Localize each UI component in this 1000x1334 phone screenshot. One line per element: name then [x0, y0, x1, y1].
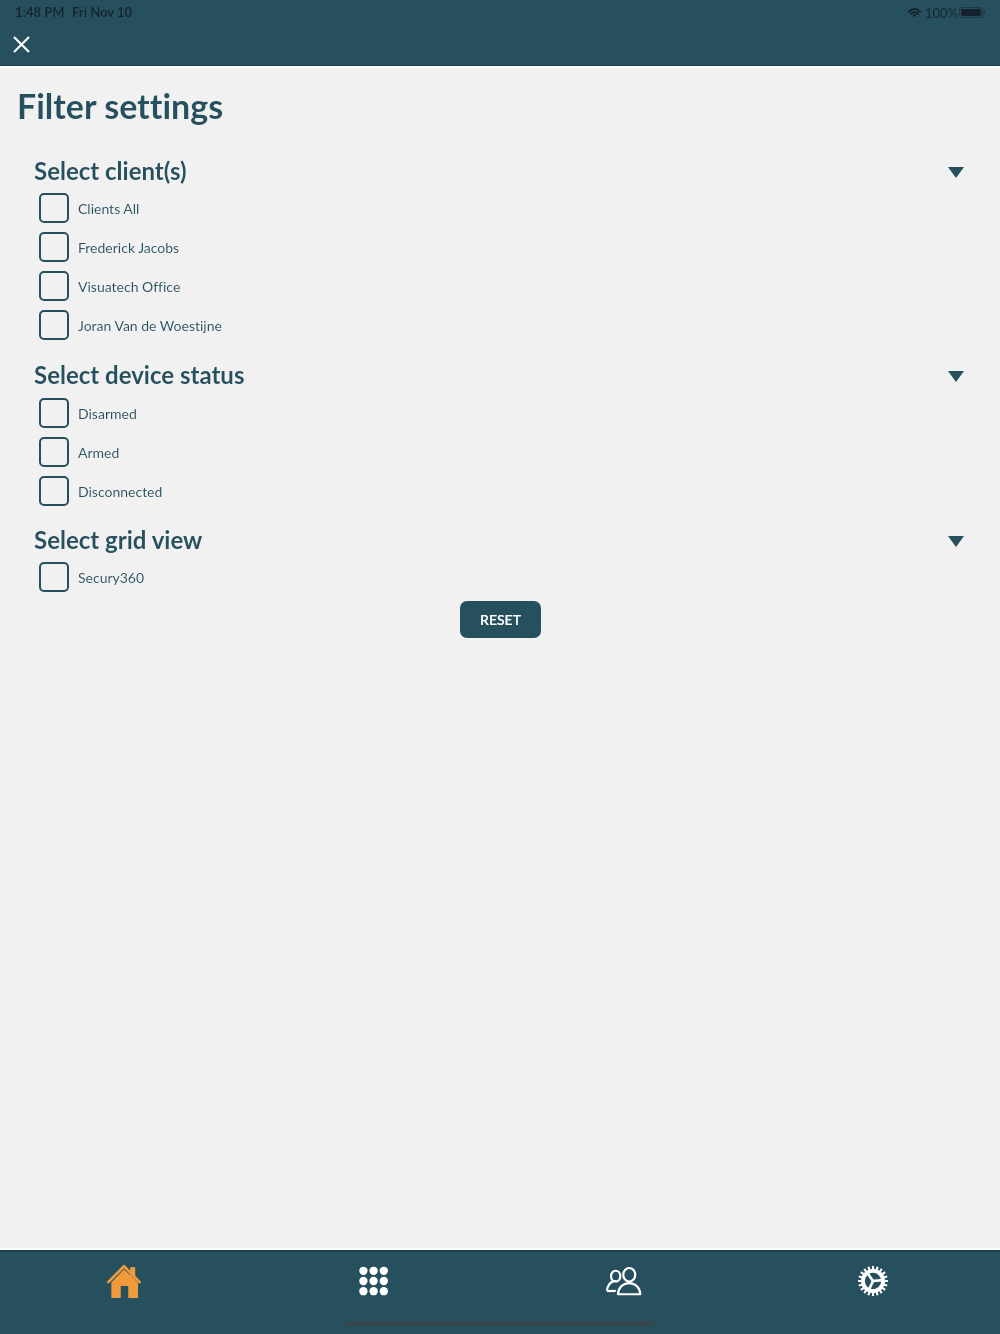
- button[interactable]: Select grid view: [0, 524, 1000, 554]
- button[interactable]: Secury360: [0, 558, 1000, 596]
- staticText: Filter settings: [17, 85, 224, 126]
- button[interactable]: RESET: [460, 601, 541, 638]
- button[interactable]: Home: [64, 1248, 184, 1314]
- staticText: Select grid view: [34, 525, 203, 554]
- button[interactable]: Joran Van de Woestijne: [0, 306, 1000, 344]
- staticText: Disarmed: [78, 405, 137, 422]
- button[interactable]: Close: [5, 28, 37, 60]
- button[interactable]: Disarmed: [0, 394, 1000, 432]
- button[interactable]: Armed: [0, 433, 1000, 471]
- staticText: Disconnected: [78, 483, 163, 500]
- button[interactable]: Clients: [564, 1248, 684, 1314]
- staticText: Select device status: [34, 360, 245, 389]
- button[interactable]: Visuatech Office: [0, 267, 1000, 305]
- button[interactable]: Disconnected: [0, 472, 1000, 510]
- staticText: Joran Van de Woestijne: [78, 317, 222, 334]
- staticText: Frederick Jacobs: [78, 239, 180, 256]
- button[interactable]: Frederick Jacobs: [0, 228, 1000, 266]
- staticText: Secury360: [78, 569, 145, 586]
- staticText: 100%: [925, 5, 959, 21]
- button[interactable]: Devices: [313, 1248, 433, 1314]
- button[interactable]: Clients All: [0, 189, 1000, 227]
- staticText: Visuatech Office: [78, 278, 181, 295]
- staticText: Fri Nov 10: [72, 4, 133, 20]
- staticText: 1:48 PM: [15, 4, 65, 20]
- button[interactable]: Settings: [813, 1248, 933, 1314]
- button[interactable]: Select client(s): [0, 155, 1000, 185]
- staticText: RESET: [480, 611, 521, 628]
- staticText: Select client(s): [34, 156, 187, 185]
- button[interactable]: Select device status: [0, 359, 1000, 389]
- staticText: Armed: [78, 444, 120, 461]
- staticText: Clients All: [78, 200, 140, 217]
